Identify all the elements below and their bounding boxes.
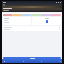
button[interactable]: Tab 3 (40, 60, 42, 62)
button[interactable] (3, 17, 31, 25)
button[interactable] (4, 27, 60, 28)
button[interactable]: Back (3, 4, 5, 6)
button[interactable] (4, 29, 60, 30)
button[interactable]: Category (3, 14, 12, 16)
button[interactable]: Tab 2 (22, 60, 24, 62)
button[interactable]: Continue (3, 57, 61, 59)
button[interactable]: Category (12, 14, 21, 16)
button[interactable] (32, 17, 61, 25)
button[interactable]: Tab 1 (3, 60, 5, 62)
button[interactable]: Category (51, 14, 61, 16)
button[interactable]: Tab 4 (59, 60, 61, 62)
